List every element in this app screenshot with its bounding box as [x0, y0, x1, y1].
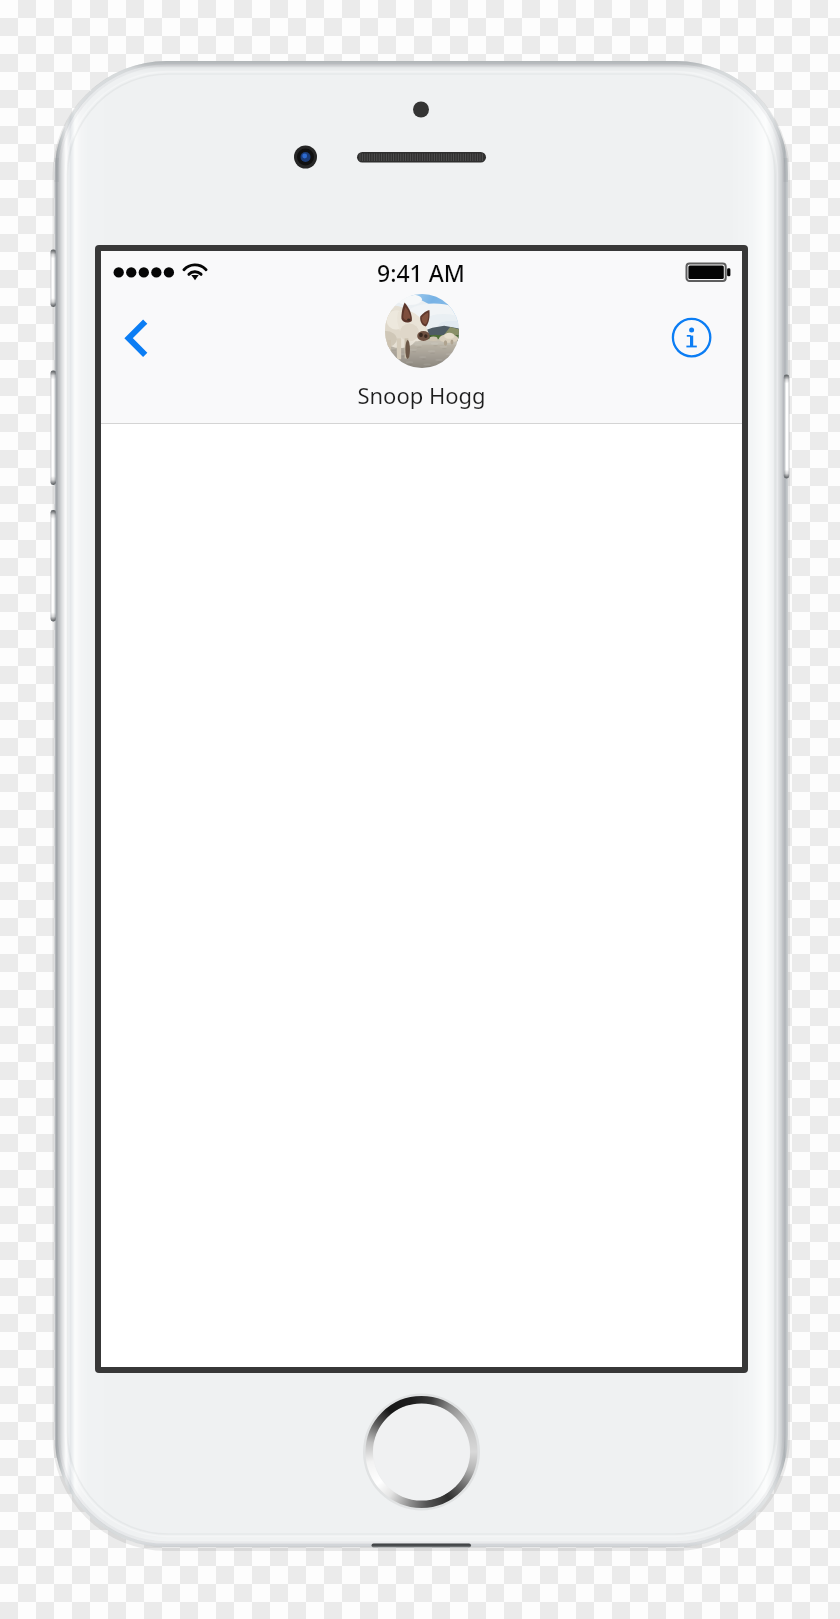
button[interactable]: Details	[665, 307, 727, 369]
button[interactable]: Back	[109, 307, 171, 369]
staticText: Snoop Hogg	[357, 380, 486, 410]
button[interactable]: Snoop Hogg	[357, 294, 486, 410]
staticText: 9:41 AM	[377, 257, 465, 288]
